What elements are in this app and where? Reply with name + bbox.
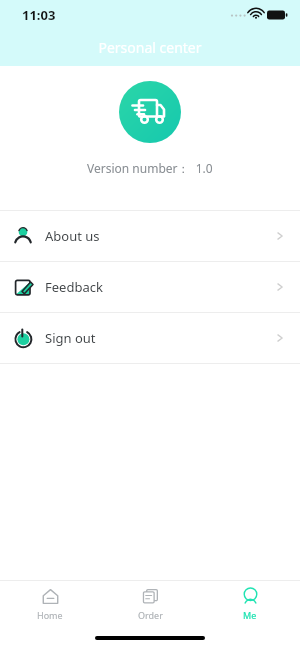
staticText: Feedback xyxy=(45,278,103,296)
staticText: Home xyxy=(37,609,63,621)
staticText: Me xyxy=(243,609,257,621)
button[interactable]: Sign out xyxy=(0,313,300,363)
staticText: Version number： 1.0 xyxy=(87,160,213,176)
button[interactable]: Feedback xyxy=(0,262,300,312)
other: Status icons xyxy=(230,9,288,21)
staticText: Personal center xyxy=(98,38,202,57)
staticText: About us xyxy=(45,227,100,245)
button[interactable]: About us xyxy=(0,211,300,261)
staticText: Sign out xyxy=(45,329,96,347)
staticText: Order xyxy=(138,609,163,621)
button[interactable]: Order xyxy=(100,581,200,627)
button[interactable]: Me xyxy=(200,581,300,627)
button[interactable]: Home xyxy=(0,581,100,627)
staticText: 11:03 xyxy=(22,6,56,24)
